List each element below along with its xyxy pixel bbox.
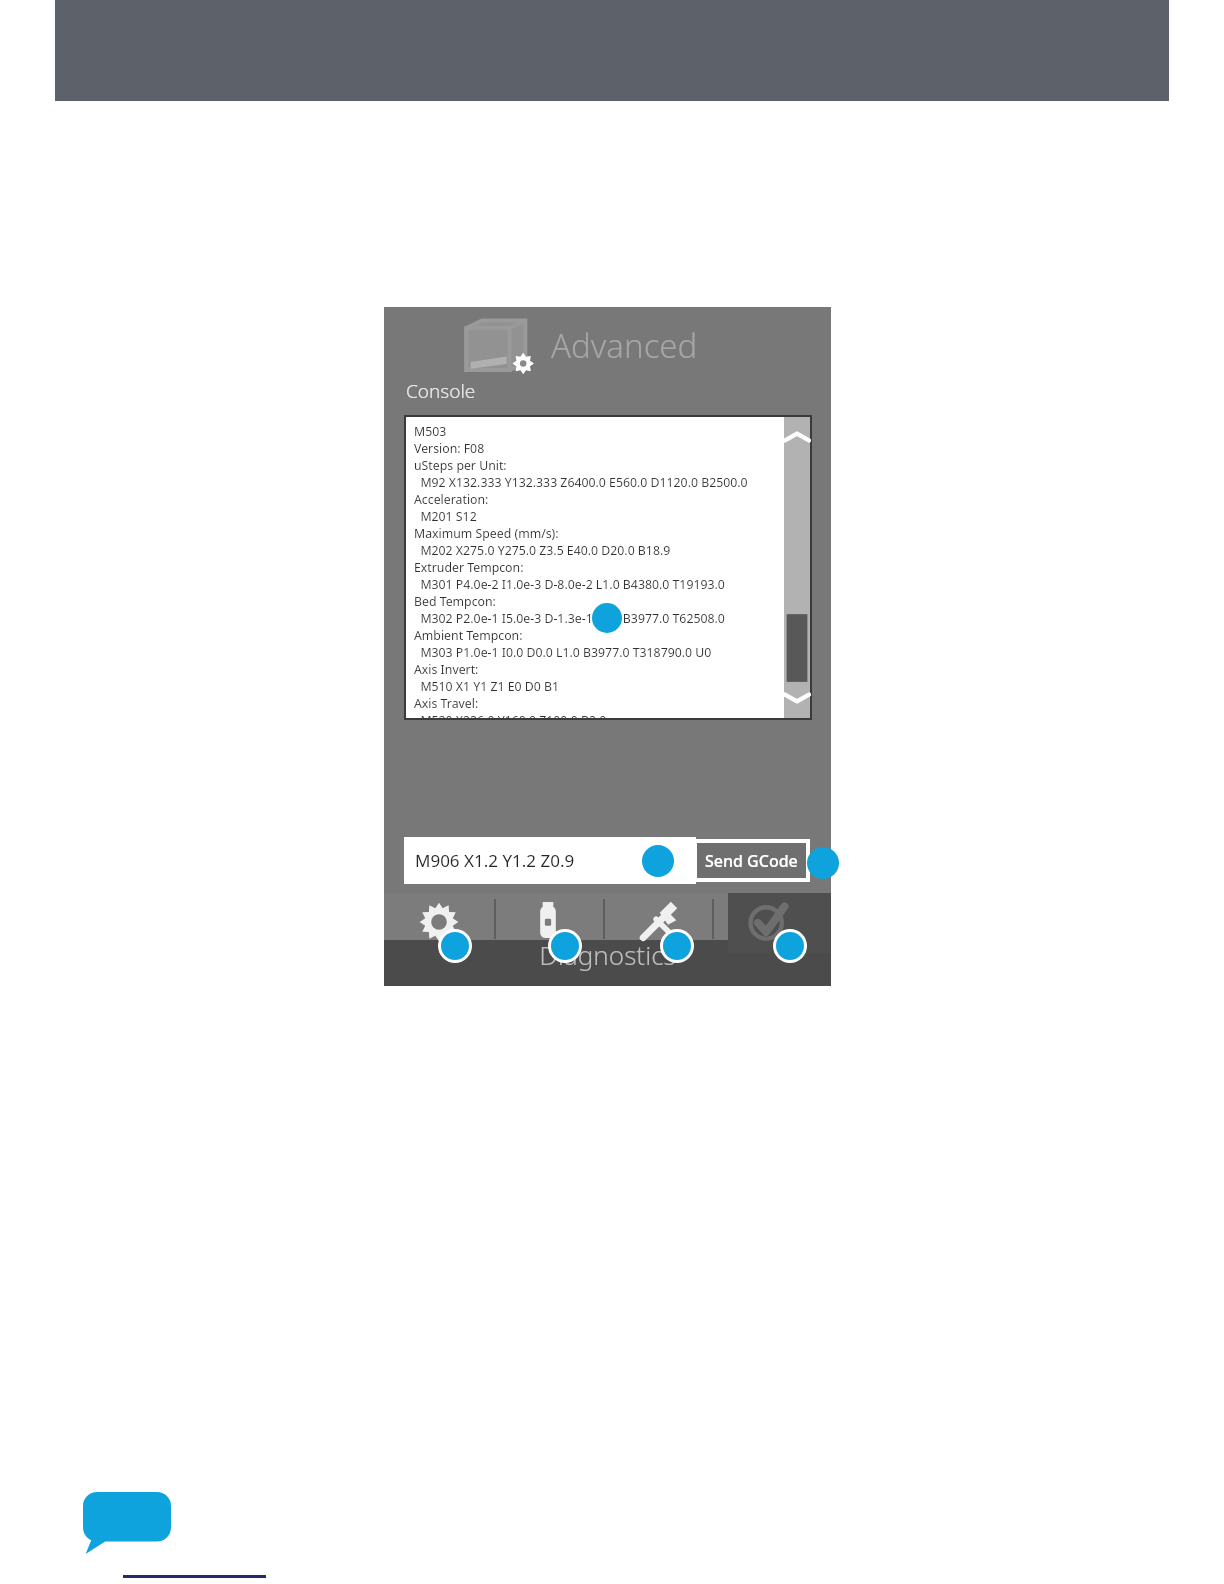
staticText: Axis Invert: bbox=[414, 661, 479, 678]
button[interactable]: Diagnostics bbox=[740, 899, 796, 945]
staticText: M301 P4.0e-2 I1.0e-3 D-8.0e-2 L1.0 B4380… bbox=[414, 576, 725, 593]
staticText: Version: F08 bbox=[414, 440, 485, 457]
staticText: Send GCode bbox=[705, 850, 798, 872]
staticText: M906 X1.2 Y1.2 Z0.9 bbox=[415, 849, 575, 872]
staticText: Bed Tempcon: bbox=[414, 593, 496, 610]
staticText: Console bbox=[406, 378, 476, 404]
staticText: Maximum Speed (mm/s): bbox=[414, 525, 559, 542]
staticText: uSteps per Unit: bbox=[414, 457, 507, 474]
staticText: M510 X1 Y1 Z1 E0 D0 B1 bbox=[414, 678, 560, 695]
staticText: M202 X275.0 Y275.0 Z3.5 E40.0 D20.0 B18.… bbox=[414, 542, 671, 559]
button[interactable]: Scroll console bbox=[784, 417, 810, 718]
staticText: Advanced bbox=[551, 323, 698, 368]
staticText: M201 S12 bbox=[414, 508, 477, 525]
staticText: M92 X132.333 Y132.333 Z6400.0 E560.0 D11… bbox=[414, 474, 748, 491]
button[interactable]: Settings bbox=[411, 899, 467, 945]
button[interactable]: Send GCode bbox=[693, 839, 810, 882]
staticText: Diagnostics bbox=[384, 937, 831, 972]
staticText: M303 P1.0e-1 I0.0 D0.0 L1.0 B3977.0 T318… bbox=[414, 644, 712, 661]
button[interactable]: Tools bbox=[629, 899, 685, 945]
staticText: M520 X226.0 Y160.0 Z100.0 B2.0 bbox=[414, 712, 607, 718]
staticText: Extruder Tempcon: bbox=[414, 559, 524, 576]
staticText: M302 P2.0e-1 I5.0e-3 D-1.3e-1 L1.0 B3977… bbox=[414, 610, 725, 627]
button[interactable]: USB drive bbox=[520, 899, 576, 945]
staticText: Ambient Tempcon: bbox=[414, 627, 523, 644]
staticText: Axis Travel: bbox=[414, 695, 479, 712]
staticText: M503 bbox=[414, 423, 447, 440]
staticText: Acceleration: bbox=[414, 491, 489, 508]
button[interactable]: M906 X1.2 Y1.2 Z0.9 bbox=[404, 837, 696, 884]
